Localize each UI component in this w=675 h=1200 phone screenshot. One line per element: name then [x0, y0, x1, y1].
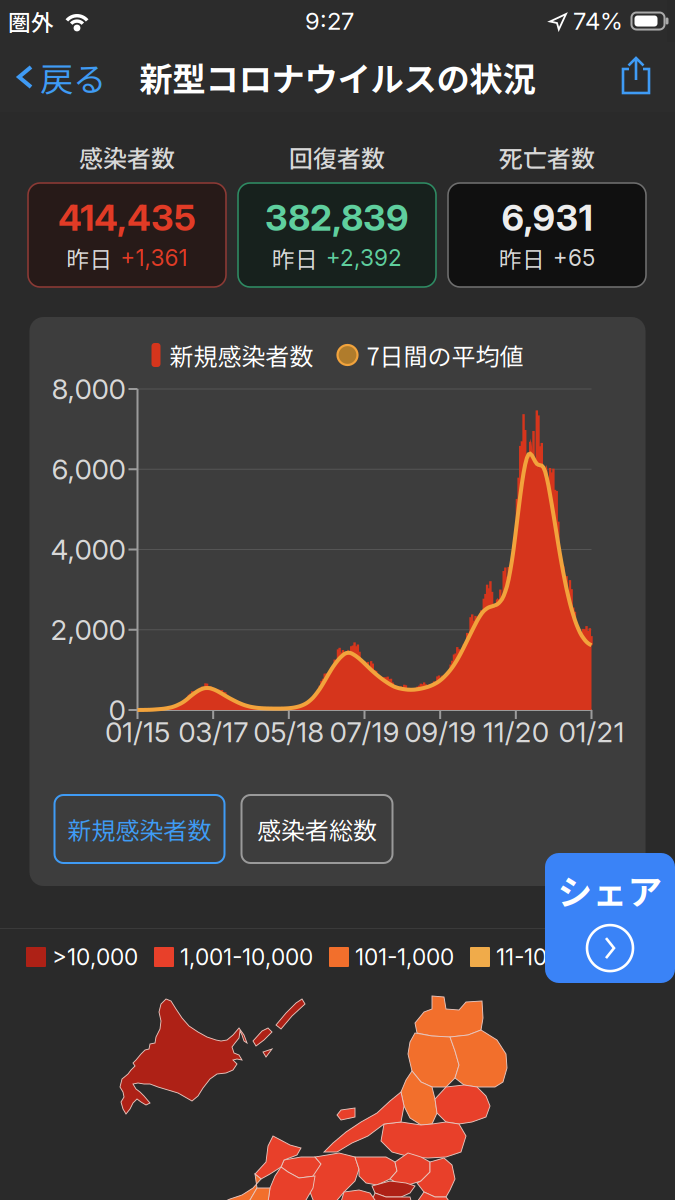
staticText: >10,000 — [52, 943, 138, 971]
staticText: 8,000 — [51, 372, 125, 406]
staticText: 新規感染者数 — [169, 338, 313, 372]
button[interactable]: 共有 — [617, 55, 675, 99]
staticText: 回復者数 — [289, 140, 385, 174]
staticText: 1,001-10,000 — [180, 943, 313, 971]
staticText: 382,839 — [265, 196, 409, 239]
staticText: 戻る — [40, 53, 106, 101]
staticText: 死亡者数 — [499, 140, 595, 174]
staticText: 新型コロナウイルスの状況 — [139, 53, 535, 101]
staticText: 6,000 — [51, 452, 125, 486]
staticText: 07/19 — [329, 715, 399, 749]
staticText: 昨日 — [272, 241, 318, 274]
staticText: 4,000 — [50, 533, 125, 566]
button[interactable]: 感染者総数 — [241, 795, 392, 863]
staticText: 7日間の平均値 — [366, 338, 523, 372]
staticText: 09/19 — [404, 715, 476, 749]
staticText: 03/17 — [178, 715, 248, 749]
staticText: 101-1,000 — [355, 943, 454, 971]
staticText: 11/20 — [483, 715, 549, 749]
staticText: 昨日 — [66, 241, 112, 274]
staticText: 01/15 — [105, 715, 170, 749]
staticText: シェア — [557, 865, 662, 915]
staticText: 9:27 — [305, 6, 354, 35]
staticText: 0 — [108, 693, 125, 727]
staticText: 05/18 — [253, 715, 324, 749]
staticText: 感染者数 — [79, 140, 175, 174]
button[interactable]: シェア — [545, 853, 675, 983]
staticText: 感染者総数 — [257, 812, 377, 846]
staticText: +1,361 — [120, 244, 187, 271]
button[interactable]: 6,931 — [448, 183, 646, 287]
button[interactable]: 新規感染者数 — [54, 795, 224, 863]
staticText: 6,931 — [501, 196, 592, 239]
staticText: 11-100 — [496, 943, 561, 971]
staticText: 2,000 — [50, 613, 125, 647]
staticText: 新規感染者数 — [67, 812, 211, 846]
staticText: +65 — [553, 244, 595, 271]
staticText: +2,392 — [326, 244, 402, 271]
staticText: 74% — [573, 6, 623, 35]
button[interactable]: 382,839 — [238, 183, 436, 287]
button[interactable]: 戻る — [0, 42, 150, 112]
staticText: 01/21 — [558, 715, 624, 749]
staticText: 昨日 — [499, 241, 545, 274]
staticText: 圏外 — [8, 5, 54, 37]
button[interactable]: 414,435 — [28, 183, 226, 287]
staticText: 414,435 — [58, 196, 196, 239]
